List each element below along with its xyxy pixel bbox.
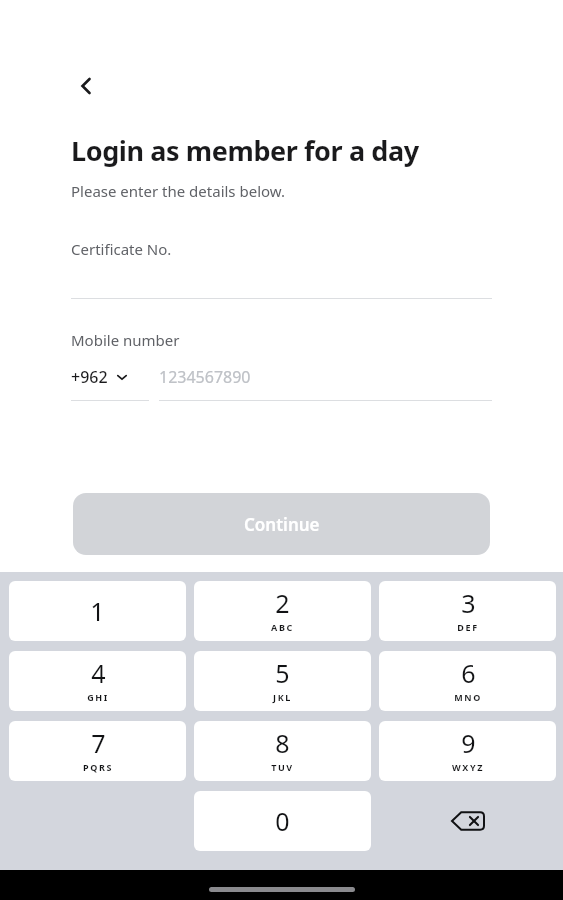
button[interactable]: 3 [379,581,556,641]
button[interactable]: 4 [9,651,186,711]
button[interactable]: 7 [9,721,186,781]
staticText: 7 [91,726,106,760]
staticText: Please enter the details below. [71,181,285,201]
button[interactable]: 6 [379,651,556,711]
staticText: Certificate No. [71,239,172,259]
staticText: 6 [461,656,476,690]
staticText: ABC [271,621,294,633]
button[interactable]: Back [62,62,110,110]
staticText: 0 [275,804,290,838]
staticText: 9 [461,726,476,760]
staticText: 1234567890 [159,366,251,388]
staticText: 2 [275,586,290,620]
button[interactable]: Continue [73,493,490,555]
button[interactable]: 2 [194,581,371,641]
button[interactable]: 1234567890 [159,366,492,401]
button[interactable]: 8 [194,721,371,781]
staticText: DEF [457,621,479,633]
button[interactable]: Certificate No. [0,239,563,299]
staticText: 4 [91,656,106,690]
button[interactable]: 1 [9,581,186,641]
staticText: 5 [275,656,290,690]
staticText: MNO [454,691,482,703]
button[interactable]: 5 [194,651,371,711]
staticText: 8 [275,726,290,760]
staticText: Login as member for a day [71,132,419,169]
staticText: Mobile number [71,330,180,350]
staticText: WXYZ [452,761,484,773]
staticText: Continue [244,513,320,536]
button[interactable]: +962 [71,366,149,401]
button[interactable]: 9 [379,721,556,781]
button[interactable]: 0 [194,791,371,851]
staticText: +962 [71,366,108,388]
staticText: TUV [271,761,294,773]
staticText: 3 [461,586,476,620]
button[interactable]: Backspace [379,791,556,851]
staticText: 1 [90,594,105,628]
staticText: PQRS [83,761,113,773]
staticText: JKL [273,691,292,703]
staticText: GHI [87,691,109,703]
